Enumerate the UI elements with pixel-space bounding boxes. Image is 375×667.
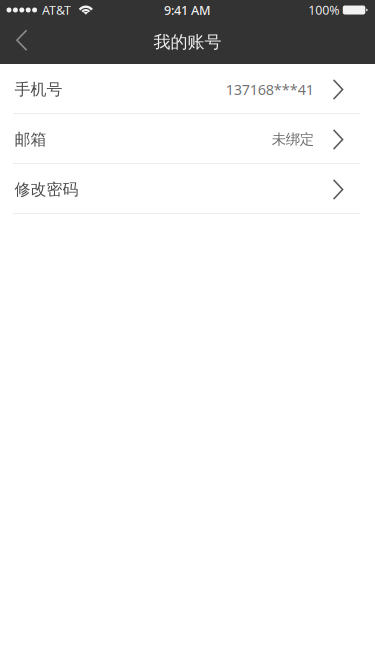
staticText: AT&T [42,2,71,18]
staticText: 137168***41 [226,80,314,99]
staticText: 修改密码 [14,180,78,199]
staticText: 手机号 [14,80,62,99]
button[interactable]: 邮箱 [0,114,375,164]
button[interactable]: Back [0,20,54,64]
staticText: 我的账号 [153,32,221,52]
button[interactable]: 修改密码 [0,164,375,214]
staticText: 邮箱 [14,130,46,149]
staticText: 未绑定 [272,131,314,148]
button[interactable]: 手机号 [0,64,375,114]
staticText: 9:41 AM [164,2,211,18]
staticText: 100% [308,2,339,18]
